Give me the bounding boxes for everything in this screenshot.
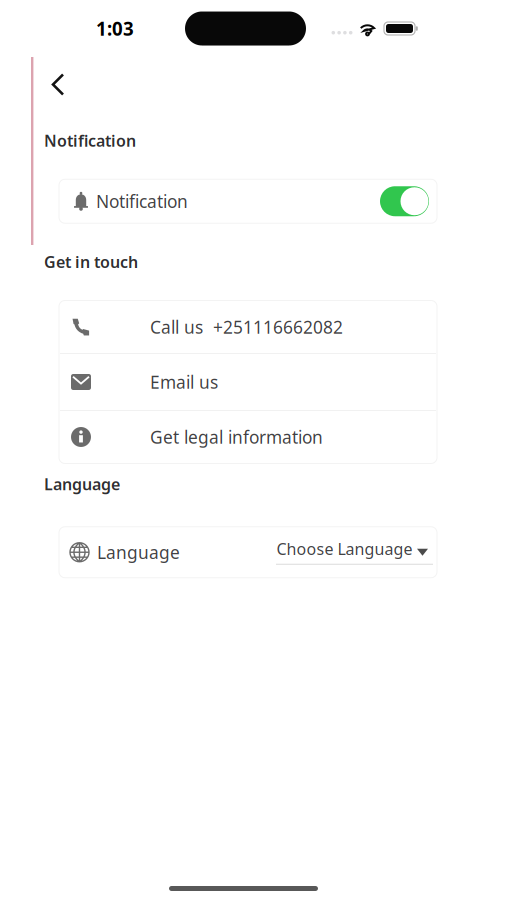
button[interactable]: Call us +251116662082 (59, 301, 437, 353)
button[interactable]: Email us (59, 354, 437, 410)
staticText: Language (97, 541, 180, 564)
staticText: 1:03 (96, 16, 134, 41)
staticText: Call us +251116662082 (150, 315, 343, 338)
staticText: Get legal information (150, 425, 323, 448)
button[interactable]: Back (43, 64, 73, 104)
staticText: Email us (150, 370, 218, 393)
staticText: Notification (96, 190, 188, 213)
staticText: Choose Language (276, 538, 412, 559)
staticText: Get in touch (44, 251, 138, 272)
staticText: Language (44, 473, 120, 495)
button[interactable]: Notification (59, 179, 437, 223)
button[interactable]: Language (59, 527, 437, 578)
staticText: Notification (44, 130, 136, 151)
button[interactable]: Get legal information (59, 411, 437, 463)
